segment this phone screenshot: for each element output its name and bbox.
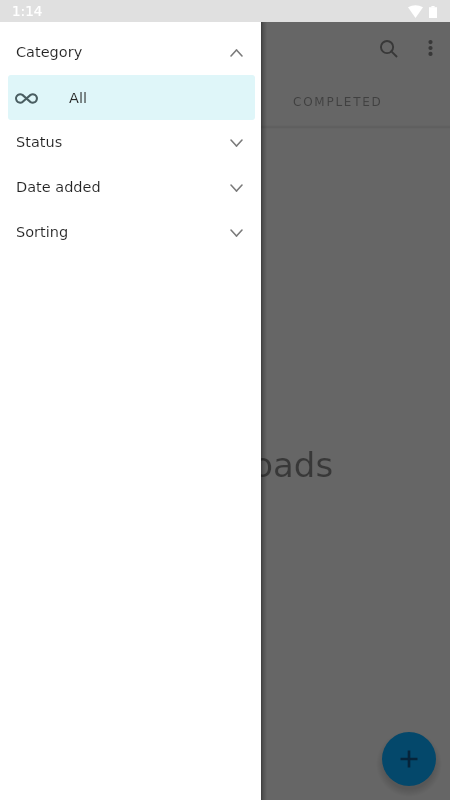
staticText: No downloads: [94, 445, 334, 485]
button[interactable]: Search: [372, 32, 404, 64]
button[interactable]: COMPLETED: [225, 78, 450, 126]
staticText: COMPLETED: [293, 95, 383, 109]
button[interactable]: Add download: [382, 732, 436, 786]
staticText: Date added: [16, 179, 101, 196]
button[interactable]: Sorting: [0, 210, 261, 255]
staticText: DOWNLOADING: [56, 95, 170, 109]
button[interactable]: DOWNLOADING: [0, 78, 225, 126]
button[interactable]: All: [8, 75, 255, 120]
staticText: Category: [16, 44, 83, 61]
staticText: All: [69, 90, 87, 107]
button[interactable]: Date added: [0, 165, 261, 210]
button[interactable]: Category: [0, 30, 261, 75]
button[interactable]: More options: [414, 32, 446, 64]
staticText: Status: [16, 134, 63, 151]
staticText: Sorting: [16, 224, 69, 241]
button[interactable]: Status: [0, 120, 261, 165]
staticText: 1:14: [12, 3, 43, 19]
